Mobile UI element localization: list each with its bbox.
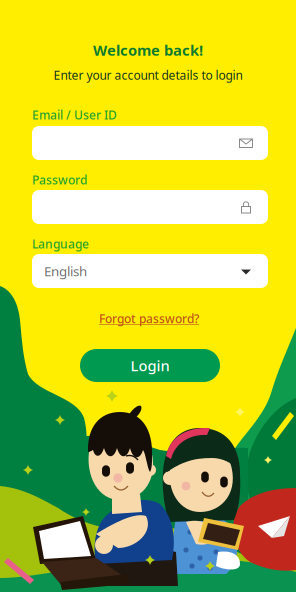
button[interactable]: Login [80,349,220,382]
button[interactable]: Language English [32,254,268,288]
staticText: Welcome back! [93,40,203,60]
staticText: Password [32,172,87,188]
staticText: Language [32,236,89,252]
staticText: English [44,262,87,280]
staticText: Login [130,356,169,375]
button[interactable]: Forgot password? [93,311,205,326]
staticText: Forgot password? [99,310,199,326]
staticText: Enter your account details to login [53,67,242,83]
button[interactable]: Email or user ID [32,126,268,160]
staticText: Email / User ID [32,107,117,123]
button[interactable]: Password [32,190,268,224]
